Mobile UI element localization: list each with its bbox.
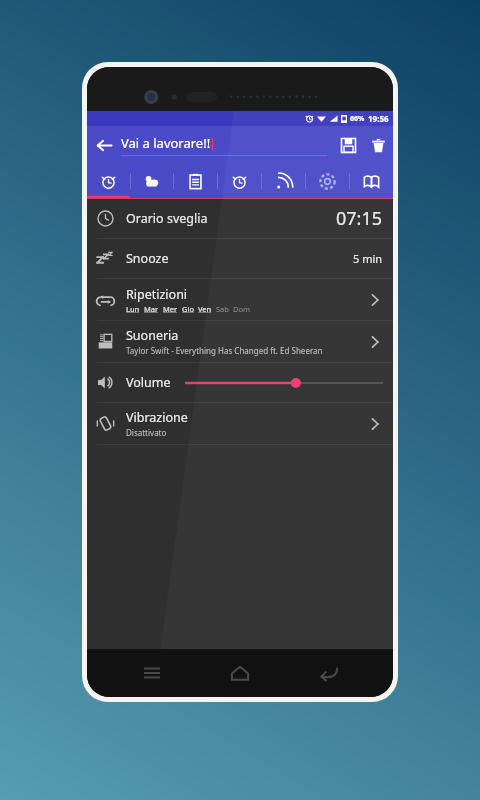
staticText: Dom (233, 304, 251, 314)
staticText: 5 min (353, 251, 383, 266)
staticText: Sab (216, 304, 229, 314)
button[interactable]: Feeds (261, 164, 305, 198)
button[interactable]: Timer (217, 164, 261, 198)
button[interactable]: Weather (130, 164, 173, 198)
staticText: Suoneria (126, 327, 179, 344)
button[interactable]: Ripetizioni (87, 279, 393, 320)
staticText: Volume (126, 374, 171, 391)
button[interactable]: Back (305, 649, 353, 697)
button[interactable]: Orario sveglia (87, 199, 393, 238)
staticText: Snooze (126, 250, 169, 267)
button[interactable]: Settings (305, 164, 349, 198)
staticText: 07:15 (336, 206, 383, 231)
staticText: Disattivato (126, 427, 167, 438)
button[interactable]: Volume (87, 363, 393, 402)
staticText: Ven (198, 304, 212, 314)
button[interactable]: Alarm (87, 164, 130, 198)
button[interactable]: Guide (349, 164, 393, 198)
button[interactable]: Notes (173, 164, 217, 198)
staticText: Lun (126, 304, 140, 314)
staticText: Mar (144, 304, 159, 314)
button[interactable]: Home (216, 649, 264, 697)
staticText: Orario sveglia (126, 210, 208, 227)
staticText: Mer (163, 304, 178, 314)
button[interactable]: Delete (363, 126, 393, 164)
staticText: Ripetizioni (126, 286, 188, 303)
staticText: 66% (350, 114, 365, 124)
button[interactable]: Vibrazione (87, 403, 393, 444)
button[interactable]: Snooze (87, 239, 393, 278)
staticText: 19:56 (368, 113, 389, 124)
button[interactable]: Suoneria (87, 321, 393, 362)
staticText: Vibrazione (126, 409, 188, 426)
button[interactable]: Save (333, 126, 363, 164)
button[interactable]: Back (87, 126, 121, 164)
staticText: Vai a lavorare!! (121, 134, 211, 152)
staticText: Taylor Swift - Everything Has Changed ft… (126, 345, 323, 356)
staticText: Gio (182, 304, 194, 314)
button[interactable]: Recent apps (128, 649, 176, 697)
